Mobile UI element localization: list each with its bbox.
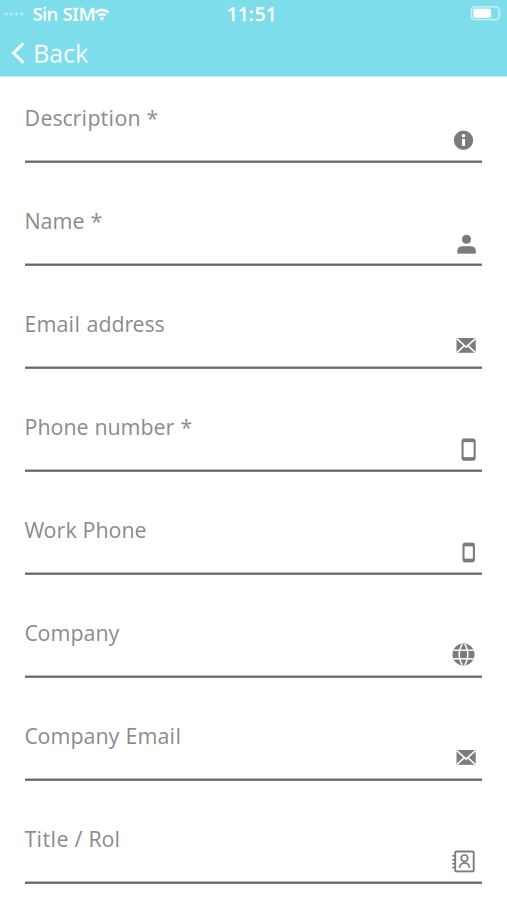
staticText: Back (33, 36, 89, 70)
staticText: Phone number * (24, 412, 192, 441)
button[interactable]: Company Email (0, 720, 507, 784)
button[interactable]: Back (0, 31, 110, 75)
button[interactable]: Description * (0, 102, 507, 166)
staticText: Name * (24, 206, 102, 235)
button[interactable]: Name * (0, 205, 507, 269)
staticText: Description * (24, 103, 158, 132)
button[interactable]: Work Phone (0, 514, 507, 578)
staticText: Sin SIM (32, 1, 95, 26)
staticText: 11:51 (226, 0, 276, 27)
staticText: Company Email (24, 721, 181, 750)
staticText: Email address (24, 309, 164, 338)
button[interactable]: Phone number * (0, 411, 507, 475)
button[interactable]: Company (0, 617, 507, 681)
button[interactable]: Title / Rol (0, 823, 507, 887)
staticText: Title / Rol (24, 824, 120, 853)
staticText: Company (24, 618, 119, 647)
button[interactable]: Email address (0, 308, 507, 372)
staticText: Work Phone (24, 515, 146, 544)
